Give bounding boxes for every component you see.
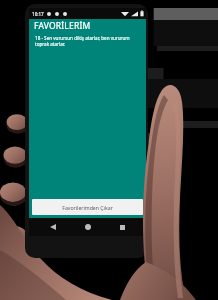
staticText: 10:17 xyxy=(32,11,44,17)
staticText: 18 - Sen vurursun dikiş atarlar, ben vur… xyxy=(35,35,140,47)
staticText: Favorilerimden Çıkar xyxy=(62,204,113,211)
staticText: FAVORİLERİM xyxy=(34,20,91,32)
button[interactable]: Recent apps xyxy=(111,218,133,236)
button[interactable]: Back xyxy=(42,218,64,236)
button[interactable]: Home xyxy=(77,218,99,236)
button[interactable]: Favorilerimden Çıkar xyxy=(32,199,143,215)
